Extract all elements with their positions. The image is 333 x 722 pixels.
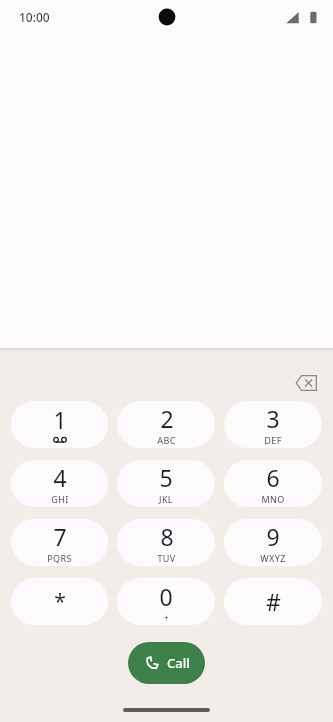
- button[interactable]: 8: [117, 519, 215, 566]
- staticText: DEF: [264, 434, 282, 446]
- staticText: 8: [160, 521, 174, 552]
- staticText: 6: [266, 462, 280, 493]
- button[interactable]: Backspace: [284, 361, 328, 405]
- staticText: GHI: [51, 493, 69, 505]
- button[interactable]: Call: [128, 642, 205, 684]
- staticText: ABC: [157, 434, 176, 446]
- staticText: 9: [266, 521, 280, 552]
- staticText: 10:00: [19, 9, 50, 25]
- button[interactable]: #: [224, 578, 322, 625]
- staticText: 3: [266, 403, 280, 434]
- staticText: 2: [160, 403, 174, 434]
- button[interactable]: 3: [224, 401, 322, 448]
- button[interactable]: 5: [117, 460, 215, 507]
- staticText: PQRS: [47, 552, 72, 564]
- staticText: TUV: [157, 552, 176, 564]
- staticText: #: [266, 586, 281, 617]
- staticText: *: [54, 587, 66, 616]
- button[interactable]: 4: [11, 460, 108, 507]
- staticText: WXYZ: [260, 552, 286, 564]
- staticText: Call: [167, 654, 190, 672]
- button[interactable]: 9: [224, 519, 322, 566]
- button[interactable]: 2: [117, 401, 215, 448]
- staticText: MNO: [261, 493, 285, 505]
- staticText: 7: [53, 521, 67, 552]
- staticText: 1: [53, 404, 67, 435]
- button[interactable]: 1: [11, 401, 108, 448]
- button[interactable]: 6: [224, 460, 322, 507]
- staticText: JKL: [159, 493, 173, 505]
- staticText: 0: [159, 581, 173, 612]
- staticText: +: [164, 612, 169, 623]
- button[interactable]: *: [11, 578, 108, 625]
- staticText: 4: [53, 462, 67, 493]
- staticText: 5: [159, 462, 173, 493]
- button[interactable]: 7: [11, 519, 108, 566]
- button[interactable]: 0: [117, 578, 215, 625]
